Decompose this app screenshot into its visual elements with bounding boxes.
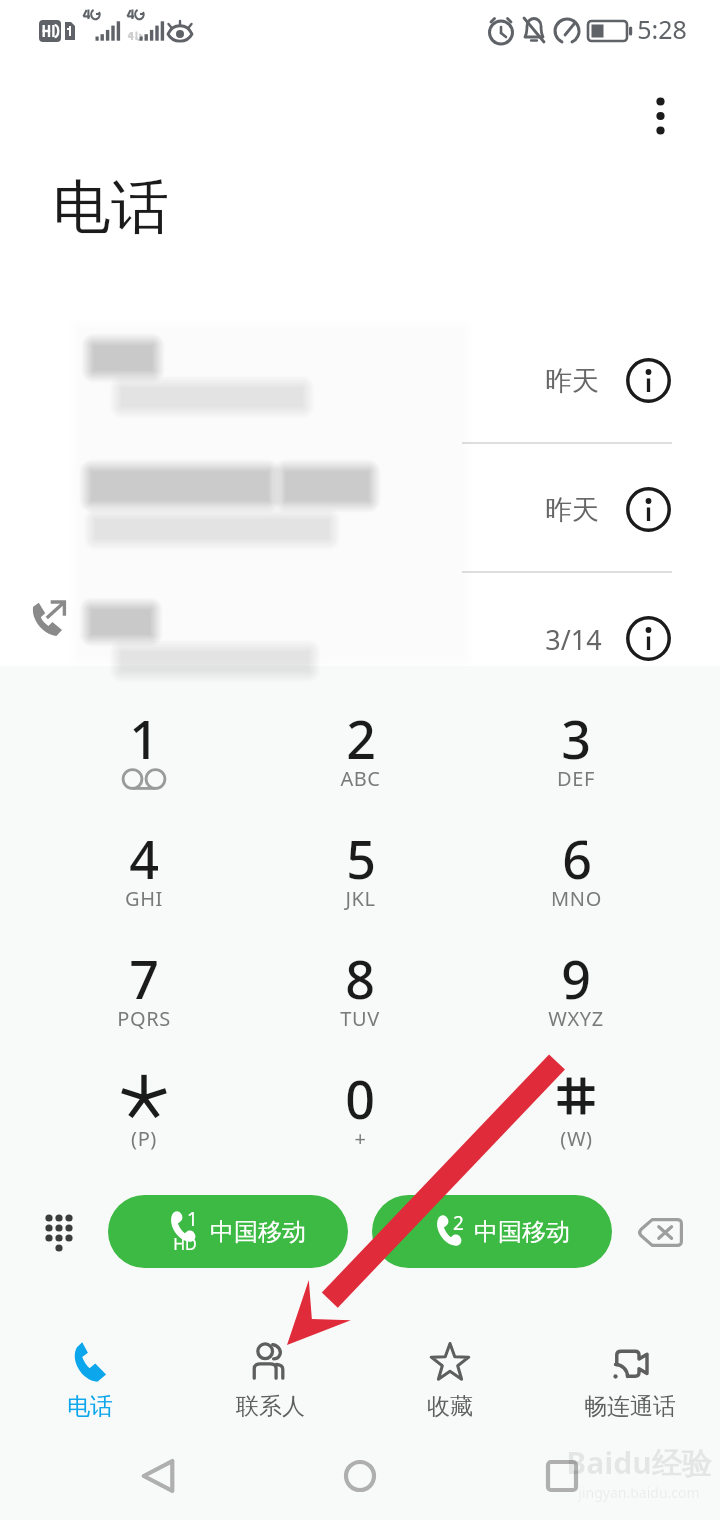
staticText: 联系人 <box>236 1392 305 1421</box>
staticText: 6 <box>562 823 592 885</box>
button[interactable]: 3 <box>468 703 684 823</box>
staticText: (P) <box>131 1125 157 1152</box>
staticText: 收藏 <box>427 1392 473 1421</box>
staticText: PQRS <box>117 1005 171 1032</box>
button[interactable]: Recents <box>518 1432 606 1520</box>
staticText: + <box>354 1125 367 1152</box>
staticText: MNO <box>551 885 602 912</box>
button[interactable]: More options <box>624 80 696 152</box>
staticText: JKL <box>345 885 376 912</box>
button[interactable]: 收藏 <box>360 1322 540 1426</box>
button[interactable]: (P) <box>36 1063 252 1183</box>
button[interactable]: Keypad <box>26 1195 100 1269</box>
button[interactable]: 7 <box>36 943 252 1063</box>
staticText: Baidu经验 <box>566 1442 712 1483</box>
button[interactable]: 8 <box>252 943 468 1063</box>
button[interactable]: 0 <box>252 1063 468 1183</box>
staticText: jingyan.baidu.com <box>578 1483 700 1502</box>
staticText: (W) <box>560 1125 593 1152</box>
button[interactable]: Back <box>114 1432 202 1520</box>
button[interactable]: 2 <box>372 1195 612 1268</box>
button[interactable]: 电话 <box>0 1322 180 1426</box>
staticText: 3/14 <box>545 621 602 658</box>
button[interactable]: Delete <box>624 1196 696 1268</box>
button[interactable]: 联系人 <box>180 1322 360 1426</box>
staticText: 9 <box>561 943 591 1005</box>
button[interactable]: 4 <box>36 823 252 943</box>
staticText: 0 <box>345 1063 375 1125</box>
staticText: ABC <box>340 765 381 792</box>
button[interactable]: Home <box>316 1432 404 1520</box>
staticText: 昨天 <box>545 493 599 527</box>
staticText: DEF <box>557 765 595 792</box>
staticText: TUV <box>340 1005 380 1032</box>
staticText: 电话 <box>67 1392 113 1421</box>
button[interactable]: 6 <box>468 823 684 943</box>
staticText: 3 <box>561 703 591 765</box>
staticText: 5 <box>346 823 376 885</box>
staticText: HD <box>173 1233 197 1255</box>
button[interactable]: 昨天 <box>0 316 720 444</box>
staticText: 4 <box>129 823 159 885</box>
staticText: GHI <box>125 885 163 912</box>
button[interactable]: 昨天 <box>0 445 720 573</box>
staticText: 畅连通话 <box>584 1392 676 1421</box>
staticText: 2 <box>346 703 376 765</box>
staticText: 1 <box>187 1206 198 1232</box>
staticText: 5:28 <box>637 12 687 46</box>
button[interactable]: (W) <box>468 1063 684 1183</box>
button[interactable]: 1 <box>36 703 252 823</box>
button[interactable]: 9 <box>468 943 684 1063</box>
staticText: 电话 <box>53 171 169 244</box>
button[interactable]: 5 <box>252 823 468 943</box>
staticText: 昨天 <box>545 364 599 398</box>
button[interactable]: 1 <box>108 1195 348 1268</box>
button[interactable]: 2 <box>252 703 468 823</box>
staticText: WXYZ <box>548 1005 604 1032</box>
staticText: 2 <box>453 1210 464 1236</box>
staticText: 7 <box>129 943 159 1005</box>
button[interactable]: 畅连通话 <box>540 1322 720 1426</box>
staticText: 中国移动 <box>210 1217 306 1247</box>
button[interactable]: 3/14 <box>0 574 720 702</box>
staticText: 中国移动 <box>474 1217 570 1247</box>
staticText: 1 <box>129 703 159 765</box>
staticText: 8 <box>345 943 375 1005</box>
